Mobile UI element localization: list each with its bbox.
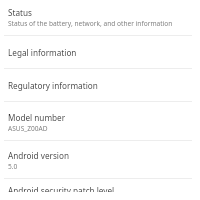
staticText: Status of the battery, network, and othe…	[8, 19, 173, 28]
staticText: Android version	[8, 150, 69, 161]
button[interactable]: Legal information	[0, 36, 200, 68]
staticText: Android security patch level	[8, 185, 115, 192]
staticText: Regulatory information	[8, 80, 98, 91]
button[interactable]: Status	[0, 0, 200, 35]
staticText: Status	[8, 7, 32, 18]
staticText: Legal information	[8, 47, 77, 58]
button[interactable]: Regulatory information	[0, 69, 200, 101]
button[interactable]: Android version	[0, 141, 200, 178]
staticText: Model number	[8, 112, 66, 123]
staticText: 5.0	[8, 162, 18, 171]
staticText: ASUS_Z00AD	[8, 124, 48, 133]
button[interactable]: Model number	[0, 102, 200, 140]
button[interactable]: Android security patch level	[0, 179, 200, 200]
